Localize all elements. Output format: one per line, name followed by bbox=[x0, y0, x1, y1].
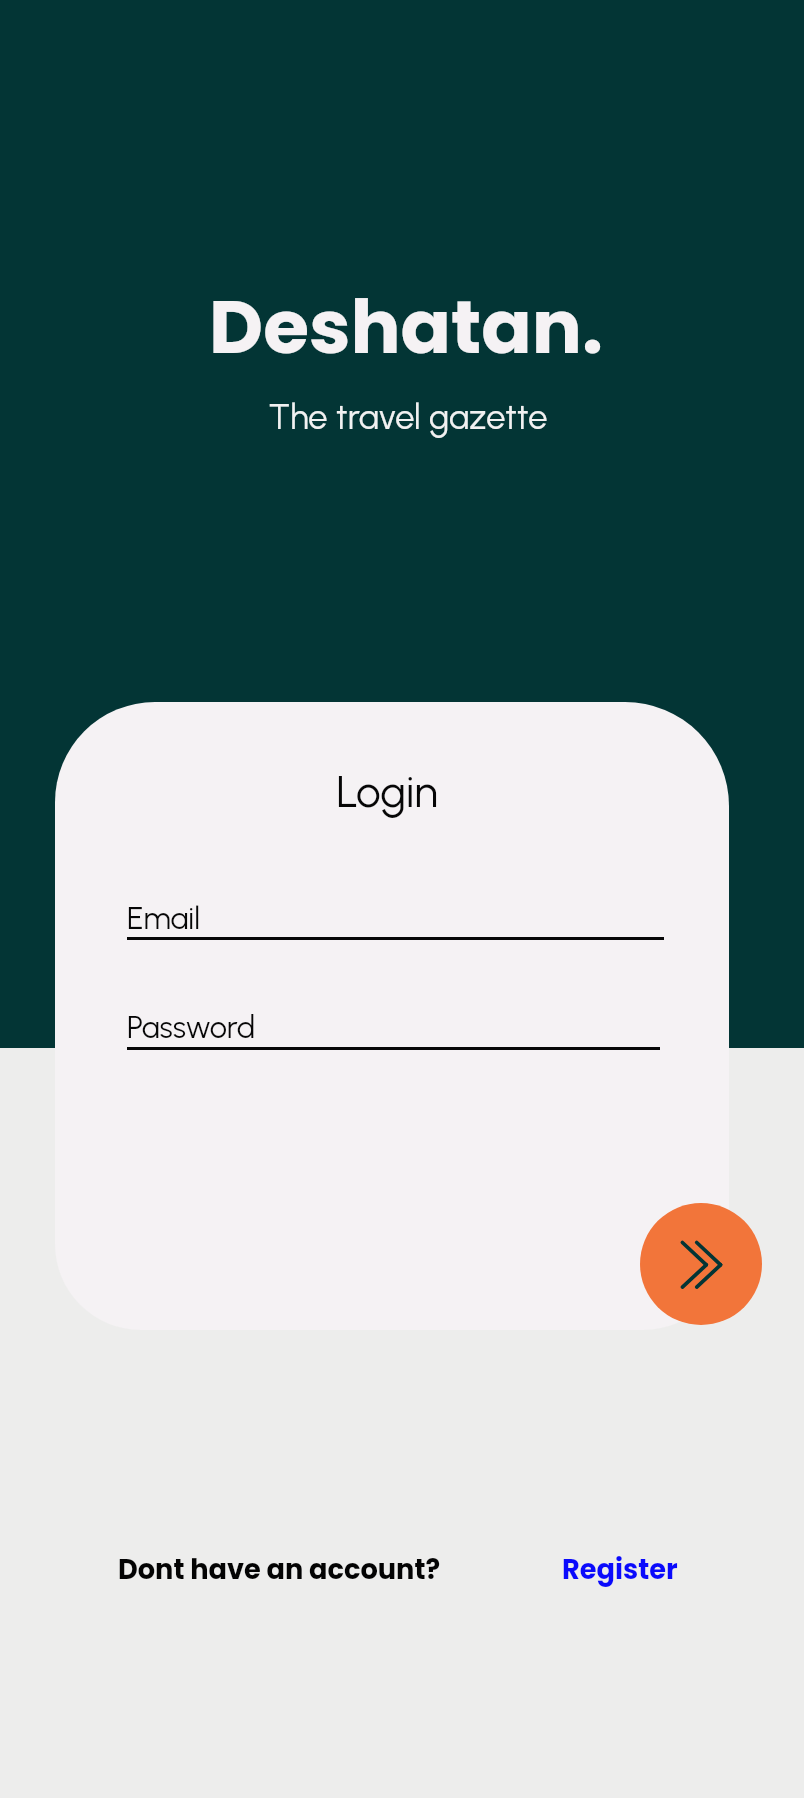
staticText: Deshatan. bbox=[4, 275, 804, 379]
button[interactable]: Dont have an account? bbox=[118, 1550, 441, 1588]
button[interactable]: Password bbox=[127, 1009, 660, 1057]
staticText: Register bbox=[562, 1550, 678, 1588]
staticText: The travel gazette bbox=[6, 396, 804, 437]
button[interactable]: Continue bbox=[640, 1203, 762, 1325]
staticText: Dont have an account? bbox=[118, 1550, 441, 1588]
button[interactable]: Register bbox=[562, 1550, 678, 1588]
button[interactable]: Email bbox=[127, 900, 664, 947]
staticText: Password bbox=[127, 1009, 256, 1046]
staticText: Email bbox=[127, 900, 201, 937]
staticText: Login bbox=[55, 765, 724, 818]
